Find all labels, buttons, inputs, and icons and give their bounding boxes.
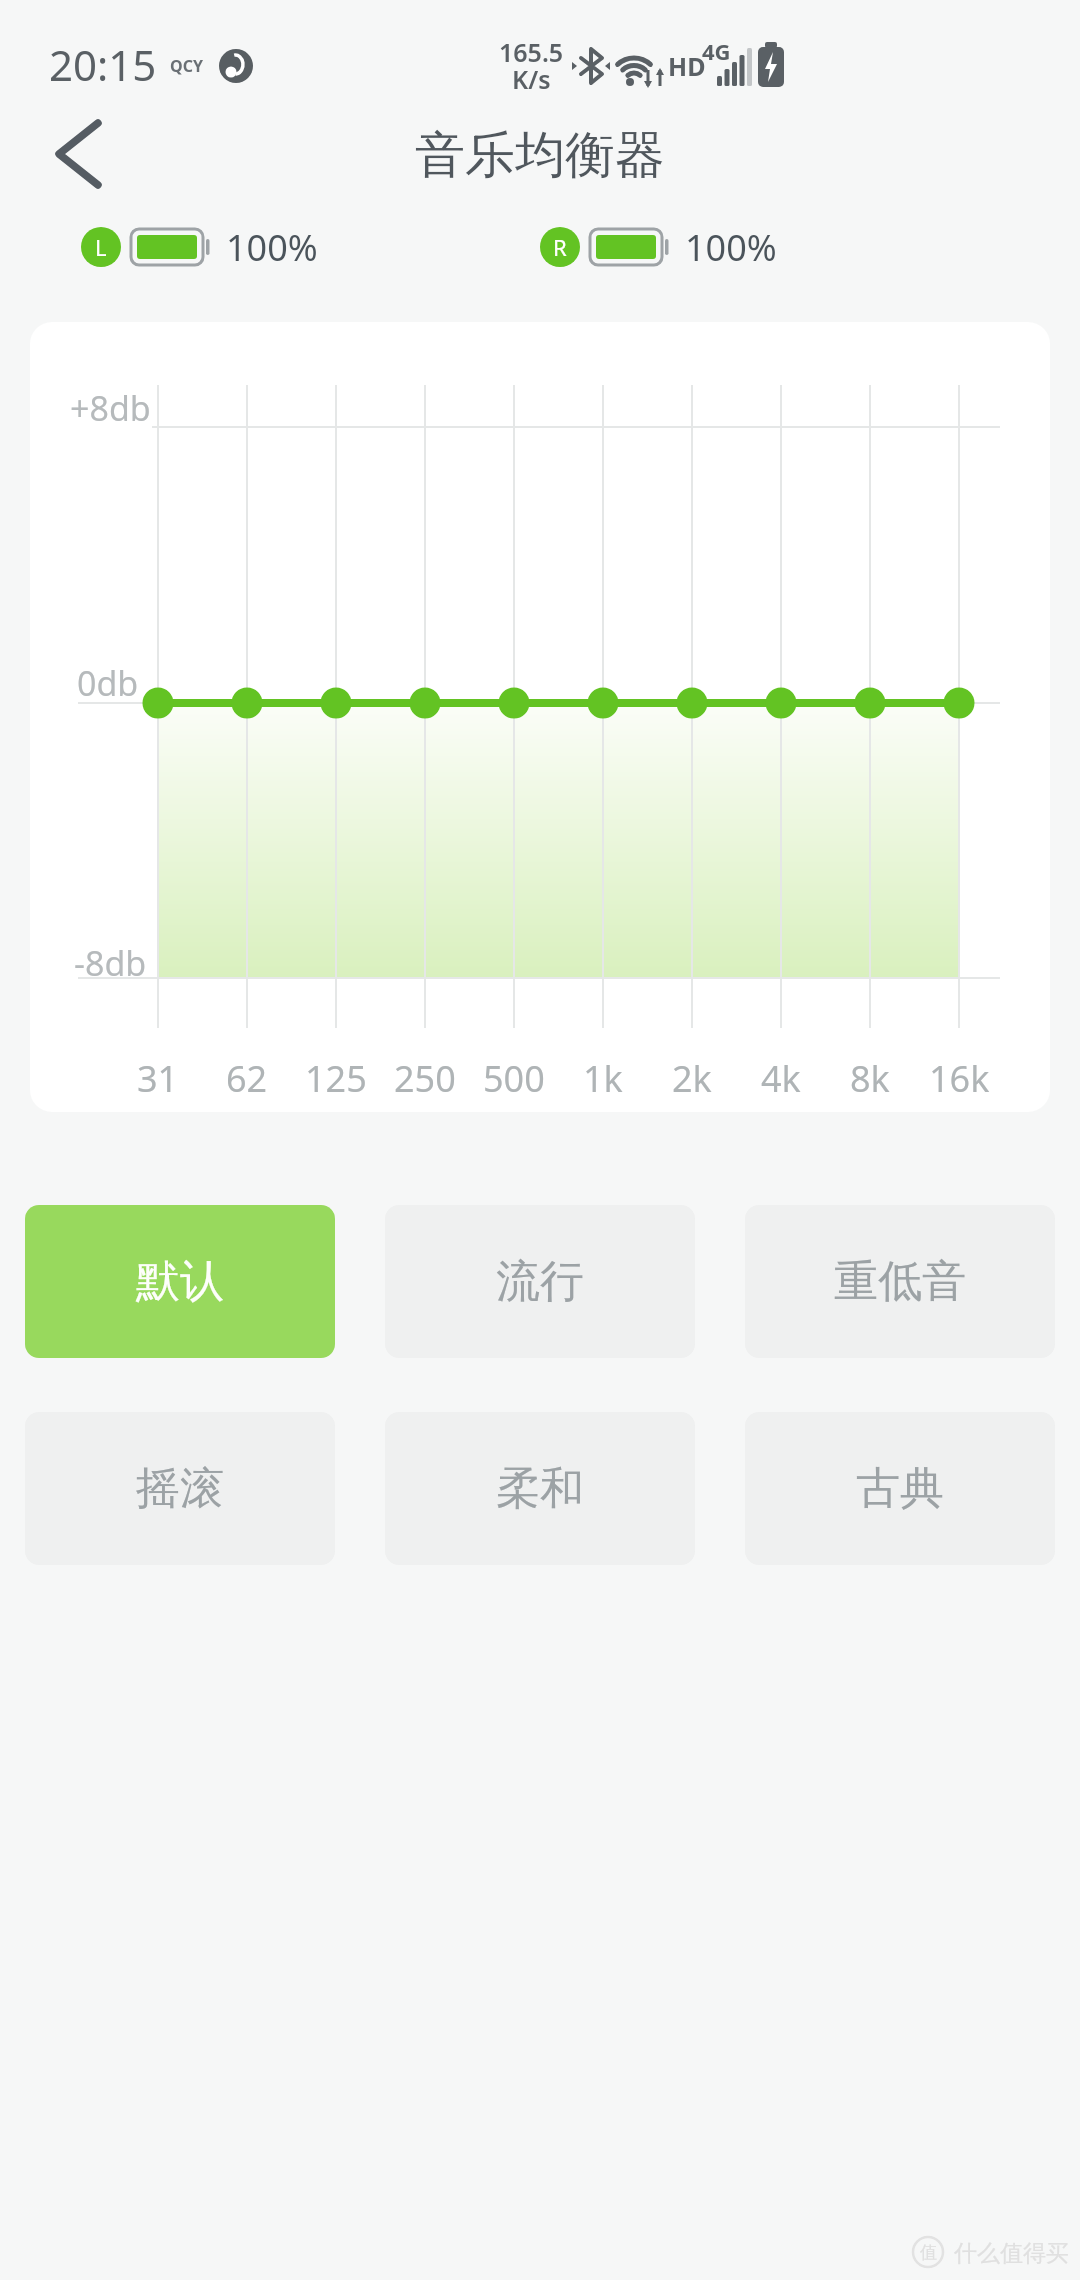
staticText: -8db [74,940,147,986]
staticText: 默认 [136,1254,224,1309]
staticText: K/s [512,62,551,96]
staticText: 流行 [496,1254,584,1309]
staticText: 8k [850,1054,890,1103]
staticText: 摇滚 [136,1461,224,1516]
staticText: 100% [226,223,318,272]
staticText: 125 [305,1054,367,1103]
staticText: 4G [702,36,731,66]
staticText: HD [668,49,706,83]
button[interactable]: 柔和 [385,1412,695,1565]
staticText: +8db [70,385,151,431]
staticText: 500 [483,1054,545,1103]
button[interactable] [30,112,120,202]
staticText: 100% [685,223,777,272]
staticText: 31 [137,1054,179,1103]
staticText: 62 [226,1054,268,1103]
staticText: 值 [920,2242,937,2263]
staticText: 16k [929,1054,990,1103]
staticText: 古典 [856,1461,944,1516]
staticText: 什么值得买 [954,2239,1069,2268]
button[interactable]: 摇滚 [25,1412,335,1565]
button[interactable]: 流行 [385,1205,695,1358]
button[interactable]: 重低音 [745,1205,1055,1358]
staticText: 重低音 [834,1254,966,1309]
button[interactable]: 默认 [25,1205,335,1358]
staticText: 柔和 [496,1461,584,1516]
staticText: 250 [394,1054,456,1103]
staticText: 4k [761,1054,801,1103]
staticText: QCY [170,55,203,77]
button[interactable]: 古典 [745,1412,1055,1565]
staticText: 165.5 [499,35,564,69]
staticText: 0db [77,660,139,706]
staticText: L [95,232,107,262]
staticText: R [553,232,567,262]
staticText: 2k [672,1054,712,1103]
staticText: 20:15 [49,36,157,93]
staticText: 1k [583,1054,623,1103]
staticText: 音乐均衡器 [415,124,665,187]
